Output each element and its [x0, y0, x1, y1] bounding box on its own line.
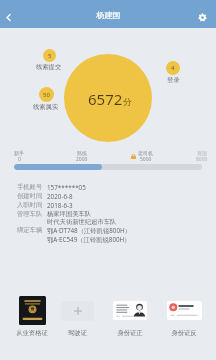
staticText: 驾驶证: [68, 329, 87, 337]
staticText: 时代天街新世纪超市车队: [47, 218, 117, 226]
button[interactable]: Settings: [193, 8, 211, 26]
button[interactable]: [167, 296, 202, 325]
button[interactable]: [19, 296, 46, 325]
staticText: 50: [43, 91, 50, 99]
button[interactable]: [61, 296, 94, 325]
button[interactable]: [113, 296, 147, 325]
staticText: 绑定车辆: [17, 226, 43, 234]
staticText: 5: [48, 52, 52, 60]
staticText: 杨家坪国美车队: [47, 210, 92, 218]
staticText: 8000: [196, 156, 208, 163]
staticText: 线索提交: [36, 63, 62, 71]
staticText: 157******05: [47, 183, 86, 192]
staticText: 分: [123, 97, 132, 108]
staticText: 0: [18, 156, 21, 163]
staticText: 入职时间: [17, 201, 43, 209]
staticText: 创建时间: [17, 192, 43, 200]
button[interactable]: Back: [0, 5, 20, 29]
staticText: 身份证正: [117, 329, 143, 337]
staticText: 老司机: [138, 150, 153, 156]
button[interactable]: 6572: [64, 54, 152, 142]
staticText: 登录: [167, 76, 180, 84]
staticText: 身份证反: [171, 329, 197, 337]
staticText: 6572: [88, 89, 123, 109]
staticText: 鄂A·DT748（江铃凯锐800H）: [47, 226, 131, 235]
staticText: 杨建国: [96, 10, 121, 20]
staticText: 2018-6-3: [47, 201, 73, 210]
button[interactable]: 5: [43, 49, 56, 62]
staticText: 2020-6-8: [47, 192, 73, 201]
staticText: 管理车队: [17, 210, 43, 218]
button[interactable]: 4: [166, 61, 180, 75]
staticText: 新手: [14, 150, 24, 156]
button[interactable]: 50: [39, 87, 54, 102]
staticText: 5000: [140, 156, 152, 163]
staticText: 4: [171, 64, 175, 72]
staticText: 鄂A·EC549（江铃凯锐800H）: [47, 235, 131, 244]
staticText: 2000: [76, 156, 88, 163]
staticText: 从业资格证: [16, 329, 48, 337]
staticText: 熟练: [77, 150, 87, 156]
staticText: 资深: [197, 150, 207, 156]
staticText: 线索属实: [33, 103, 59, 111]
staticText: 手机账号: [17, 183, 43, 191]
